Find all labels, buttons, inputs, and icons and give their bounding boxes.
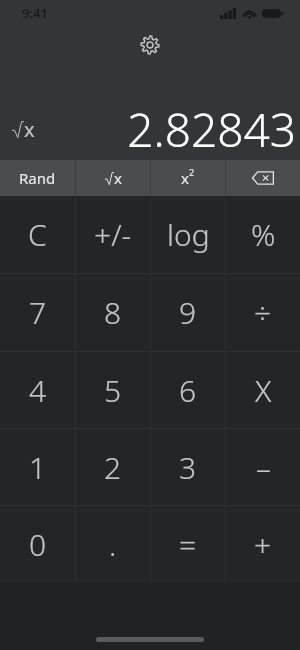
button[interactable]: 8	[76, 274, 150, 351]
staticText: x	[114, 168, 122, 188]
button[interactable]: log	[151, 196, 225, 273]
staticText: x	[181, 168, 189, 188]
button[interactable]: .	[76, 506, 150, 582]
staticText: x	[24, 116, 35, 143]
staticText: 5	[104, 370, 122, 411]
staticText: 0	[29, 524, 47, 565]
button[interactable]: 5	[76, 352, 150, 428]
staticText: 1	[29, 447, 47, 488]
button[interactable]: ÷	[226, 274, 300, 351]
button[interactable]: 9	[151, 274, 225, 351]
staticText: 2	[189, 166, 195, 178]
button[interactable]: 0	[0, 506, 75, 582]
staticText: 9	[179, 292, 197, 333]
staticText: X	[255, 370, 272, 411]
staticText: 8	[104, 292, 122, 333]
button[interactable]: +	[226, 506, 300, 582]
staticText: 3	[179, 447, 197, 488]
staticText: 2.82843	[127, 98, 296, 160]
staticText: C	[28, 214, 47, 255]
staticText: 2	[104, 447, 122, 488]
staticText: %	[251, 214, 276, 255]
button[interactable]: 7	[0, 274, 75, 351]
staticText: ÷	[254, 292, 272, 333]
button[interactable]: –	[226, 429, 300, 505]
staticText: .	[109, 524, 117, 565]
button[interactable]: =	[151, 506, 225, 582]
staticText: 9:41	[22, 4, 48, 22]
button[interactable]: Square root	[76, 160, 150, 196]
button[interactable]: 2	[76, 429, 150, 505]
staticText: 7	[29, 292, 47, 333]
button[interactable]: Rand	[0, 160, 75, 196]
button[interactable]: 6	[151, 352, 225, 428]
button[interactable]: 1	[0, 429, 75, 505]
staticText: 4	[29, 370, 47, 411]
button[interactable]: x squared	[151, 160, 225, 196]
staticText: =	[179, 524, 197, 565]
button[interactable]: Settings	[133, 28, 167, 62]
staticText: +	[254, 524, 272, 565]
button[interactable]: %	[226, 196, 300, 273]
staticText: +/-	[94, 214, 132, 255]
button[interactable]: Backspace	[226, 160, 300, 196]
button[interactable]: X	[226, 352, 300, 428]
button[interactable]: +/-	[76, 196, 150, 273]
staticText: –	[256, 447, 271, 488]
staticText: 6	[179, 370, 197, 411]
button[interactable]: 4	[0, 352, 75, 428]
staticText: log	[167, 214, 210, 255]
button[interactable]: 3	[151, 429, 225, 505]
staticText: Rand	[19, 168, 56, 188]
button[interactable]: C	[0, 196, 75, 273]
